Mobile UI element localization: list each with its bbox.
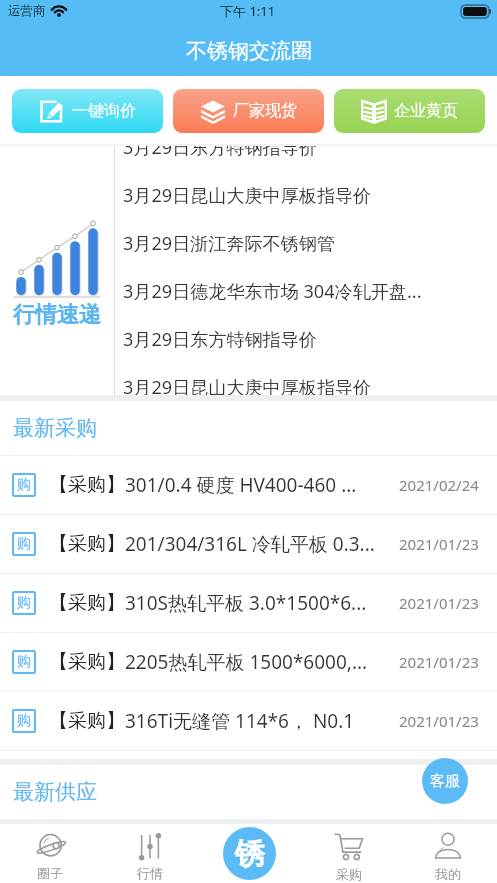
staticText: 【采购】 bbox=[49, 709, 125, 733]
staticText: 行情 bbox=[137, 865, 163, 881]
staticText: 采购 bbox=[336, 866, 362, 882]
button[interactable]: 购 bbox=[0, 692, 497, 750]
staticText: 【采购】 bbox=[49, 473, 125, 497]
staticText: 不锈钢交流圈 bbox=[186, 38, 312, 64]
staticText: 【采购】 bbox=[49, 591, 125, 615]
button[interactable]: 企业黄页 bbox=[334, 89, 485, 133]
staticText: 客服 bbox=[430, 772, 460, 791]
staticText: 2021/02/24 bbox=[399, 475, 479, 495]
button[interactable]: 3月29日德龙华东市场 304冷轧开盘... bbox=[115, 267, 497, 315]
button[interactable]: 购 bbox=[0, 633, 497, 691]
staticText: 2021/01/23 bbox=[399, 711, 479, 731]
staticText: 316Ti无缝管 114*6， N0.1 bbox=[125, 708, 355, 734]
button[interactable]: 行情 bbox=[100, 824, 200, 883]
button[interactable]: 圈子 bbox=[0, 824, 100, 883]
staticText: 企业黄页 bbox=[394, 101, 458, 121]
staticText: 最新采购 bbox=[13, 415, 97, 441]
staticText: 锈 bbox=[235, 835, 265, 873]
button[interactable]: 购 bbox=[0, 456, 497, 514]
staticText: 购 bbox=[17, 594, 31, 612]
button[interactable]: 厂家现货 bbox=[173, 89, 324, 133]
button[interactable]: 首页 bbox=[223, 827, 276, 880]
staticText: 【采购】 bbox=[49, 532, 125, 556]
staticText: 最新供应 bbox=[13, 779, 97, 805]
staticText: 3月29日德龙华东市场 304冷轧开盘... bbox=[123, 279, 422, 304]
staticText: 下午 1:11 bbox=[220, 2, 276, 20]
staticText: 2021/01/23 bbox=[399, 652, 479, 672]
staticText: 3月29日昆山大庚中厚板指导价 bbox=[123, 183, 372, 208]
button[interactable]: 3月29日东方特钢指导价 bbox=[115, 315, 497, 363]
staticText: 201/304/316L 冷轧平板 0.3... bbox=[125, 531, 375, 557]
button[interactable]: 一键询价 bbox=[12, 89, 163, 133]
staticText: 厂家现货 bbox=[233, 101, 297, 121]
staticText: 3月29日浙江奔际不锈钢管 bbox=[123, 231, 335, 256]
button[interactable]: 我的 bbox=[398, 824, 497, 883]
button[interactable]: 采购 bbox=[299, 824, 398, 883]
staticText: 3月29日东方特钢指导价 bbox=[123, 146, 317, 160]
staticText: 一键询价 bbox=[72, 101, 136, 121]
button[interactable]: 3月29日昆山大庚中厚板指导价 bbox=[115, 171, 497, 219]
staticText: 行情速递 bbox=[13, 301, 101, 329]
staticText: 圈子 bbox=[37, 865, 63, 881]
button[interactable]: 3月29日昆山大庚中厚板指导价 bbox=[115, 363, 497, 395]
button[interactable]: 客服 bbox=[422, 758, 468, 804]
staticText: 购 bbox=[17, 653, 31, 671]
staticText: 【采购】 bbox=[49, 650, 125, 674]
staticText: 2021/01/23 bbox=[399, 593, 479, 613]
staticText: 我的 bbox=[435, 866, 461, 882]
button[interactable]: 3月29日浙江奔际不锈钢管 bbox=[115, 219, 497, 267]
staticText: 310S热轧平板 3.0*1500*6... bbox=[125, 590, 367, 616]
staticText: 2021/01/23 bbox=[399, 534, 479, 554]
staticText: 运营商 bbox=[8, 3, 46, 19]
staticText: 购 bbox=[17, 535, 31, 553]
button[interactable]: 购 bbox=[0, 574, 497, 632]
button[interactable]: 3月29日东方特钢指导价 bbox=[115, 146, 497, 171]
staticText: 2205热轧平板 1500*6000,... bbox=[125, 649, 368, 675]
staticText: 购 bbox=[17, 476, 31, 494]
staticText: 购 bbox=[17, 712, 31, 730]
staticText: 3月29日昆山大庚中厚板指导价 bbox=[123, 375, 372, 395]
staticText: 3月29日东方特钢指导价 bbox=[123, 327, 317, 352]
staticText: 301/0.4 硬度 HV400-460 ... bbox=[125, 472, 357, 498]
button[interactable]: 购 bbox=[0, 515, 497, 573]
